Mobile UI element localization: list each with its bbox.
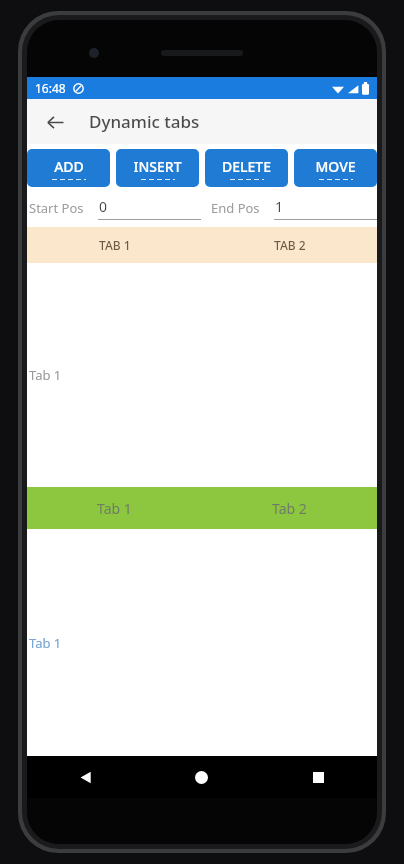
button[interactable]: Back (27, 756, 143, 798)
button[interactable]: 1 (274, 197, 377, 220)
staticText: Tab 1 (97, 499, 132, 518)
staticText: 16:48 (35, 80, 66, 96)
staticText: End Pos (211, 199, 260, 217)
button[interactable]: Tab 2 (202, 487, 377, 529)
button[interactable]: DELETE (205, 149, 288, 187)
staticText: INSERT (133, 157, 182, 176)
staticText: Tab 2 (272, 499, 307, 518)
button[interactable]: Home (143, 756, 260, 798)
staticText: Tab 1 (29, 634, 62, 652)
staticText: Start Pos (29, 199, 84, 217)
staticText: Dynamic tabs (89, 110, 200, 133)
button[interactable]: ADD (27, 149, 110, 187)
button[interactable]: TAB 1 (27, 227, 202, 263)
staticText: MOVE (315, 157, 356, 176)
staticText: DELETE (222, 157, 271, 176)
staticText: Tab 1 (29, 366, 62, 384)
staticText: 0 (99, 197, 108, 216)
staticText: 1 (275, 197, 284, 216)
staticText: TAB 2 (274, 237, 306, 253)
button[interactable]: Tab 1 (27, 487, 202, 529)
button[interactable]: TAB 2 (202, 227, 377, 263)
button[interactable]: INSERT (116, 149, 199, 187)
button[interactable]: Recent apps (260, 756, 377, 798)
button[interactable]: 0 (98, 197, 201, 220)
staticText: ADD (54, 157, 84, 176)
staticText: TAB 1 (99, 237, 131, 253)
button[interactable]: MOVE (294, 149, 377, 187)
button[interactable]: Back (37, 104, 73, 140)
